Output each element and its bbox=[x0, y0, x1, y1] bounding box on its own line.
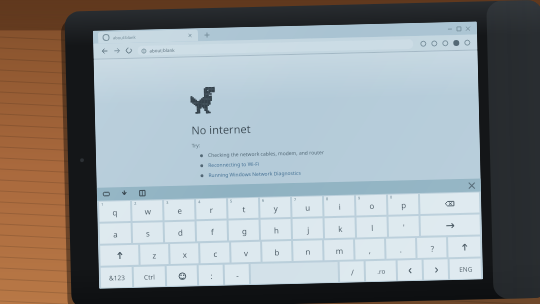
button[interactable]: l bbox=[356, 217, 387, 237]
button[interactable]: . bbox=[386, 238, 415, 259]
staticText: Ctrl bbox=[144, 272, 155, 282]
staticText: 9 bbox=[358, 195, 361, 200]
staticText: d bbox=[178, 227, 183, 238]
button[interactable] bbox=[251, 262, 338, 284]
button[interactable]: 2 bbox=[132, 200, 162, 221]
staticText: 8 bbox=[326, 196, 329, 201]
staticText: 1 bbox=[101, 202, 104, 207]
button[interactable]: 9 bbox=[356, 195, 386, 215]
button[interactable]: Running Windows Network Diagnostics bbox=[208, 170, 301, 179]
button[interactable]: a bbox=[100, 223, 131, 244]
button[interactable]: Ctrl bbox=[134, 266, 165, 287]
staticText: r bbox=[209, 204, 213, 215]
button[interactable]: Favourites bbox=[417, 37, 428, 50]
staticText: 0 bbox=[390, 194, 393, 200]
staticText: Running Windows Network Diagnostics bbox=[208, 170, 301, 179]
button[interactable]: Close tab bbox=[187, 32, 193, 38]
button[interactable]: Reconnecting to Wi-Fi bbox=[208, 161, 259, 169]
staticText: f bbox=[211, 226, 214, 237]
button[interactable]: Clipboard bbox=[137, 187, 148, 199]
button[interactable]: j bbox=[292, 218, 323, 239]
button[interactable]: 4 bbox=[196, 199, 226, 219]
button[interactable]: Settings bbox=[461, 36, 472, 49]
button[interactable]: g bbox=[229, 220, 259, 240]
button[interactable]: Collections bbox=[428, 36, 439, 50]
button[interactable]: 6 bbox=[260, 197, 290, 218]
staticText: 2 bbox=[134, 201, 137, 206]
staticText: 7 bbox=[294, 197, 297, 202]
staticText: about:blank bbox=[113, 35, 136, 40]
button[interactable]: h bbox=[260, 219, 291, 240]
staticText: Try: bbox=[192, 142, 201, 149]
button[interactable]: Hide keyboard bbox=[119, 188, 130, 199]
button[interactable]: d bbox=[165, 221, 195, 242]
staticText: . bbox=[399, 243, 402, 254]
button[interactable]: Reload bbox=[122, 44, 134, 57]
staticText: .ro bbox=[377, 267, 386, 276]
button[interactable]: New tab bbox=[203, 31, 211, 39]
button[interactable]: f bbox=[197, 221, 227, 241]
button[interactable]: Keyboard layout bbox=[101, 188, 112, 200]
button[interactable]: Close keyboard bbox=[466, 179, 477, 191]
button[interactable]: 1 bbox=[99, 201, 131, 222]
button[interactable]: 0 bbox=[388, 194, 418, 215]
button[interactable]: b bbox=[262, 241, 292, 262]
button[interactable]: x bbox=[170, 243, 199, 264]
staticText: ' bbox=[403, 221, 405, 232]
button[interactable]: Forward bbox=[110, 44, 122, 57]
staticText: y bbox=[273, 202, 278, 213]
staticText: b bbox=[274, 246, 279, 257]
button[interactable]: Back bbox=[98, 44, 110, 58]
button[interactable]: z bbox=[140, 244, 169, 265]
staticText: - bbox=[236, 269, 239, 280]
staticText: u bbox=[305, 202, 310, 213]
staticText: p bbox=[401, 199, 406, 210]
staticText: m bbox=[335, 245, 343, 256]
button[interactable]: v bbox=[231, 242, 261, 262]
staticText: z bbox=[152, 249, 156, 260]
button[interactable]: ? bbox=[417, 237, 446, 258]
button[interactable]: Enter bbox=[420, 214, 480, 236]
staticText: ENG bbox=[459, 265, 473, 274]
button[interactable]: k bbox=[324, 217, 355, 238]
staticText: ERR_INTERNET_DISCONNECTED bbox=[193, 184, 256, 191]
button[interactable]: ENG bbox=[450, 258, 481, 279]
button[interactable]: : bbox=[199, 265, 223, 285]
staticText: a bbox=[113, 228, 118, 239]
button[interactable]: &123 bbox=[101, 267, 132, 288]
button[interactable]: Minimise bbox=[445, 23, 454, 34]
button[interactable]: ' bbox=[388, 216, 419, 237]
button[interactable]: 3 bbox=[164, 199, 194, 220]
button[interactable]: n bbox=[293, 240, 323, 261]
button[interactable]: Backspace bbox=[420, 192, 479, 214]
button[interactable]: Emoji bbox=[167, 265, 197, 286]
button[interactable]: c bbox=[200, 243, 230, 263]
button[interactable]: Shift bbox=[448, 236, 480, 257]
button[interactable]: s bbox=[133, 222, 163, 243]
button[interactable]: / bbox=[340, 261, 364, 282]
button[interactable]: Extensions bbox=[439, 36, 450, 49]
button[interactable]: - bbox=[225, 264, 249, 285]
button[interactable]: m bbox=[324, 239, 354, 260]
button[interactable]: about:blank bbox=[137, 39, 413, 56]
staticText: c bbox=[213, 248, 217, 259]
button[interactable]: 5 bbox=[228, 198, 258, 218]
staticText: 6 bbox=[262, 198, 265, 203]
button[interactable]: 7 bbox=[292, 196, 322, 217]
staticText: 4 bbox=[198, 199, 201, 204]
button[interactable]: Close bbox=[463, 23, 472, 34]
staticText: e bbox=[177, 205, 182, 216]
button[interactable]: Profile bbox=[450, 36, 461, 49]
staticText: g bbox=[242, 225, 247, 236]
button[interactable]: Maximise bbox=[454, 23, 463, 34]
staticText: n bbox=[305, 246, 310, 257]
button[interactable]: 8 bbox=[324, 195, 354, 216]
staticText: t bbox=[242, 203, 245, 214]
staticText: / bbox=[351, 266, 354, 278]
button[interactable]: Left arrow bbox=[398, 260, 422, 280]
button[interactable]: , bbox=[355, 239, 385, 259]
button[interactable]: Right arrow bbox=[424, 259, 448, 280]
button[interactable]: .ro bbox=[366, 260, 396, 281]
button[interactable]: Shift bbox=[100, 245, 139, 266]
button[interactable]: about:blank bbox=[98, 29, 198, 44]
